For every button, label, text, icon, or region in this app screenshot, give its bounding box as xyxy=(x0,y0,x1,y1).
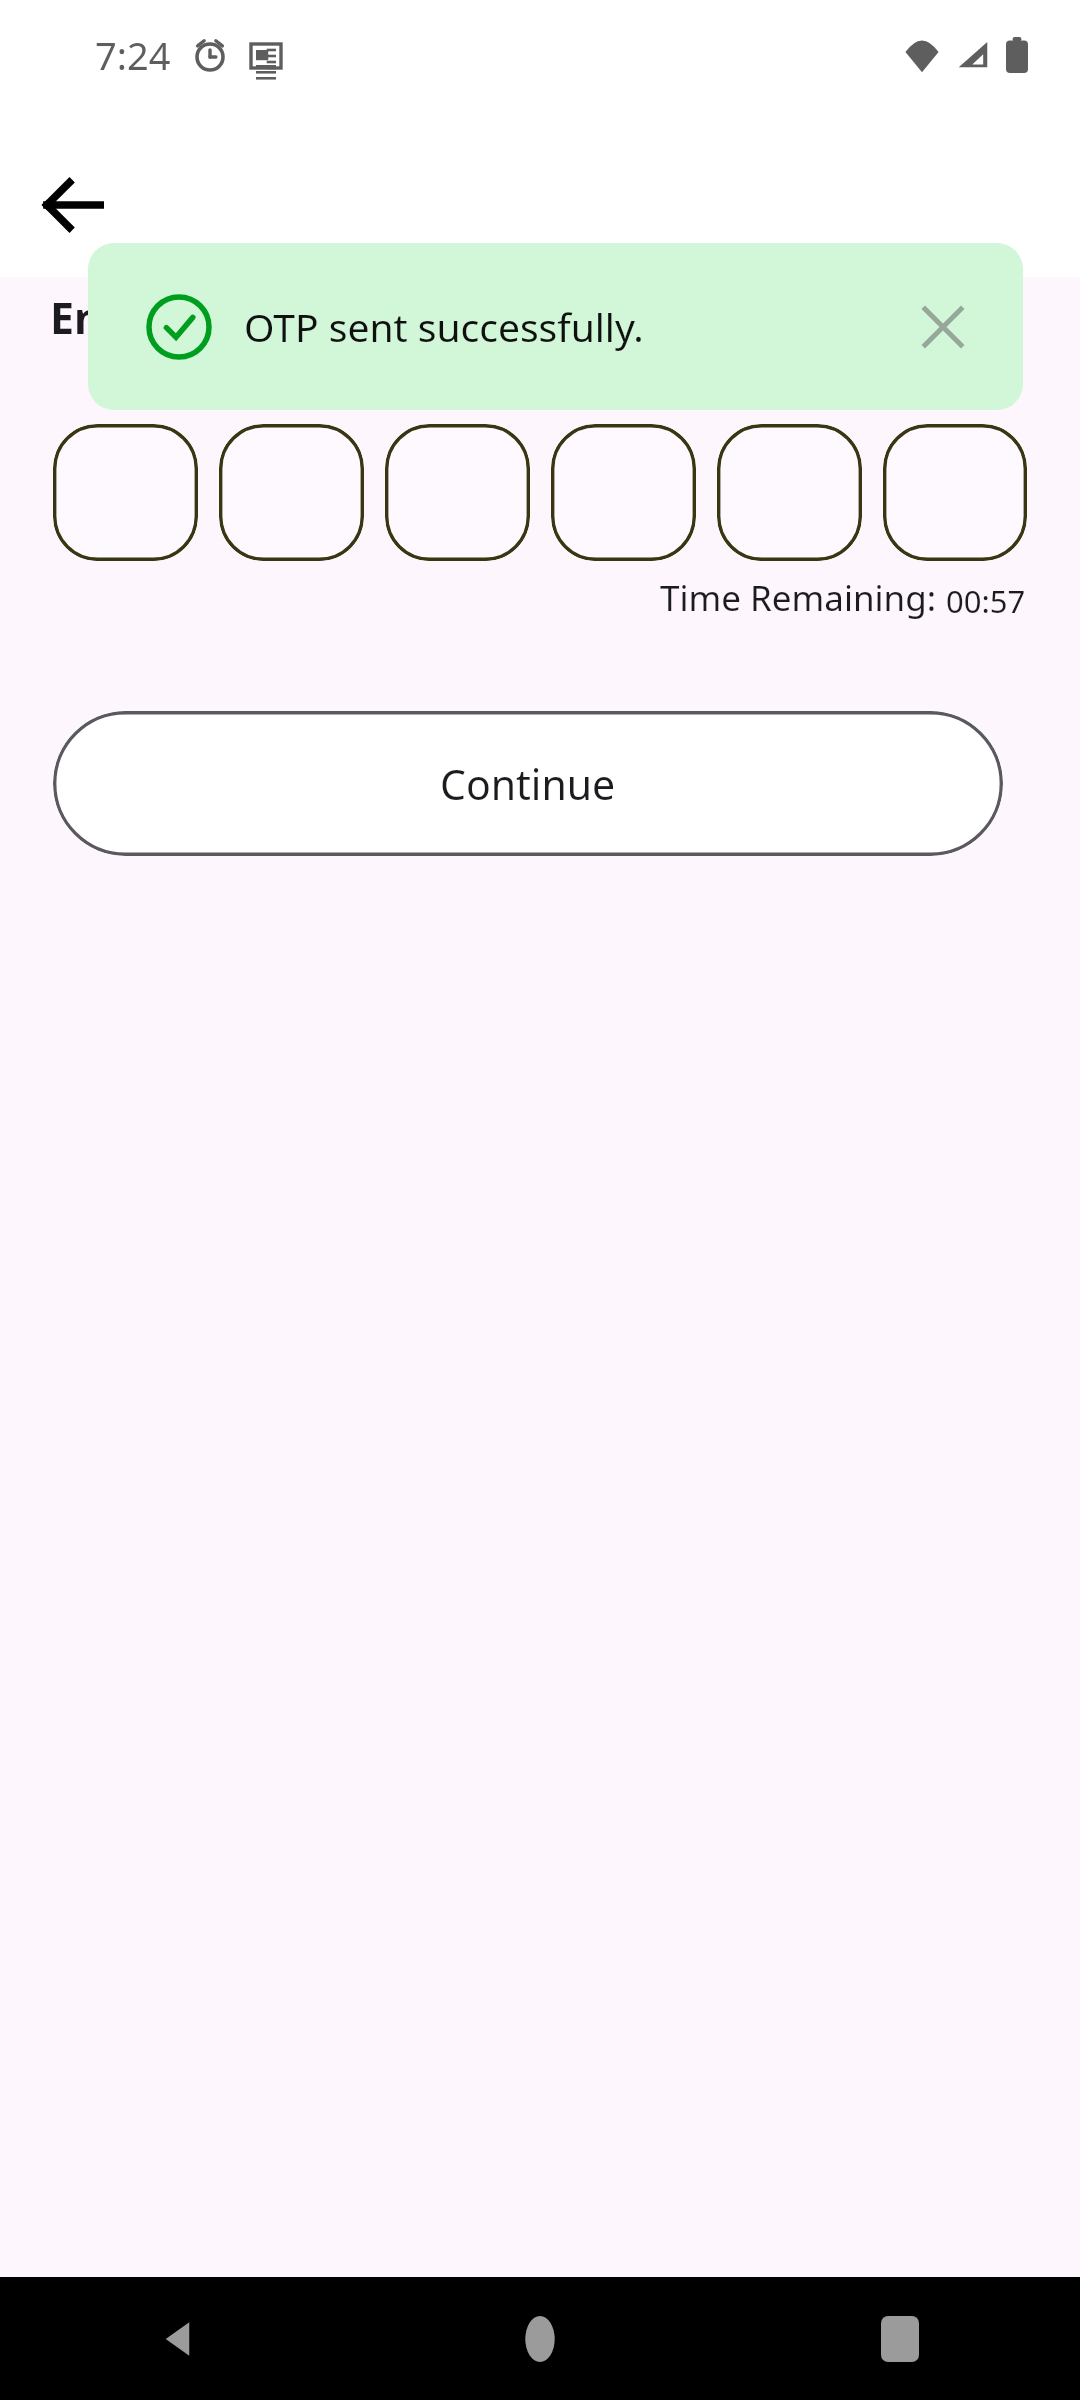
button[interactable]: Dismiss xyxy=(911,295,975,359)
staticText: OTP sent successfully. xyxy=(244,300,911,353)
staticText: Time Remaining: xyxy=(660,574,946,622)
button[interactable]: OTP digit 4 xyxy=(551,424,696,561)
button[interactable]: Continue xyxy=(53,711,1003,856)
button[interactable]: OTP digit 3 xyxy=(385,424,530,561)
staticText: Enter OTP xyxy=(50,288,262,347)
button[interactable]: Back xyxy=(21,153,125,257)
staticText: Continue xyxy=(440,756,616,812)
button[interactable]: OTP digit 1 xyxy=(53,424,198,561)
button[interactable]: Back xyxy=(120,2279,240,2399)
button[interactable]: OTP digit 2 xyxy=(219,424,364,561)
staticText: 7:24 xyxy=(95,29,171,81)
button[interactable]: Home xyxy=(480,2279,600,2399)
button[interactable]: OTP digit 5 xyxy=(717,424,862,561)
button[interactable]: Recent apps xyxy=(840,2279,960,2399)
button[interactable]: OTP digit 6 xyxy=(883,424,1027,561)
staticText: 00:57 xyxy=(946,580,1026,622)
